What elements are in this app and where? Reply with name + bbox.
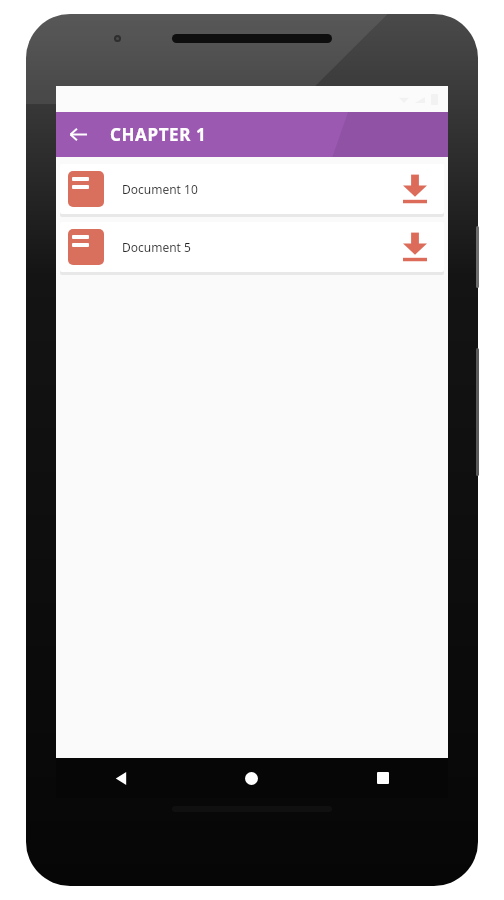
button[interactable]: Document 5 xyxy=(60,222,444,272)
staticText: Document 10 xyxy=(122,181,394,197)
button[interactable]: Back xyxy=(56,758,186,798)
button[interactable]: Document 10 xyxy=(60,164,444,214)
staticText: Document 5 xyxy=(122,239,394,255)
staticText: CHAPTER 1 xyxy=(110,123,207,146)
button[interactable]: Home xyxy=(186,758,317,798)
button[interactable]: Download xyxy=(394,226,436,268)
button[interactable]: Navigate up xyxy=(56,112,101,157)
button[interactable]: Recent apps xyxy=(317,758,448,798)
button[interactable]: Download xyxy=(394,168,436,210)
